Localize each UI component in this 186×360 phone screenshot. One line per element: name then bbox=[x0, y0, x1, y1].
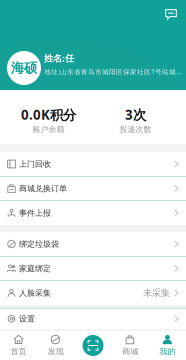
button[interactable]: 事件上报 bbox=[0, 201, 186, 225]
staticText: 商城 bbox=[122, 347, 138, 356]
staticText: 家庭绑定 bbox=[19, 264, 51, 273]
staticText: 0.0K积分 bbox=[21, 106, 76, 123]
staticText: 3次 bbox=[125, 106, 146, 123]
button[interactable]: 人脸采集 bbox=[0, 281, 186, 305]
button[interactable]: 上门回收 bbox=[0, 152, 186, 176]
button[interactable]: 发现 bbox=[37, 330, 74, 360]
staticText: 投递次数 bbox=[119, 124, 151, 134]
button[interactable]: 商城兑换订单 bbox=[0, 176, 186, 200]
button[interactable]: 我的 bbox=[149, 330, 186, 360]
button[interactable]: 绑定垃圾袋 bbox=[0, 232, 186, 256]
button[interactable]: 扫一扫 bbox=[74, 330, 112, 360]
staticText: 设置 bbox=[19, 314, 35, 324]
staticText: 地址:山东省青岛市城阳区保家社区1号站城阳区 bbox=[44, 67, 184, 76]
staticText: 人脸采集 bbox=[19, 288, 51, 298]
button[interactable]: 家庭绑定 bbox=[0, 256, 186, 280]
button[interactable]: 首页 bbox=[0, 330, 37, 360]
staticText: 我的 bbox=[159, 347, 175, 356]
button[interactable]: 消息 bbox=[162, 6, 180, 23]
staticText: 绑定垃圾袋 bbox=[19, 239, 59, 249]
button[interactable]: 商城 bbox=[112, 330, 149, 360]
staticText: 事件上报 bbox=[19, 208, 51, 218]
staticText: 商城兑换订单 bbox=[19, 184, 67, 193]
staticText: 首页 bbox=[11, 347, 27, 356]
staticText: 海硕 bbox=[11, 60, 37, 76]
staticText: 上门回收 bbox=[19, 159, 51, 169]
staticText: 未采集 bbox=[143, 287, 170, 299]
staticText: 发现 bbox=[48, 347, 64, 356]
button[interactable]: 设置 bbox=[0, 308, 186, 329]
staticText: 姓名:任 bbox=[44, 52, 74, 64]
staticText: 账户余额 bbox=[32, 124, 64, 134]
